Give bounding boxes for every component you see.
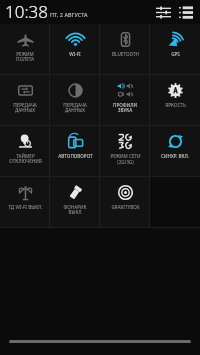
button[interactable]: СИНХР. ВКЛ.	[150, 126, 200, 176]
button[interactable]: GRAVITYBOX	[100, 177, 150, 227]
button[interactable]: АВТОПОВОРОТ	[50, 126, 100, 176]
staticText: ПТ, 2 АВГУСТА	[50, 11, 88, 18]
staticText: 10:38	[5, 0, 48, 23]
staticText: BLUETOOTH	[112, 51, 139, 57]
staticText: ТД WI-FI ВЫКЛ.	[8, 204, 43, 210]
button[interactable]: РЕЖИМ ПОЛЕТА	[0, 24, 50, 74]
staticText: GRAVITYBOX	[111, 204, 140, 210]
staticText: ПЕРЕДАЧА ДАННЫХ	[63, 102, 87, 114]
staticText: WI-FI	[69, 51, 81, 57]
button[interactable]: ПЕРЕДАЧА ДАННЫХ	[0, 75, 50, 125]
staticText: РЕЖИМ СЕТИ	[110, 153, 141, 159]
button[interactable]: ПЕРЕДАЧА ДАННЫХ	[50, 75, 100, 125]
staticText: СИНХР. ВКЛ.	[161, 153, 189, 159]
button[interactable]: ЯРКОСТЬ	[150, 75, 200, 125]
button[interactable]: РЕЖИМ СЕТИ	[100, 126, 150, 176]
button[interactable]: Settings sliders	[153, 2, 173, 22]
staticText: ТАЙМЕР ОТКЛЮЧЕНИЯ	[9, 153, 42, 165]
button[interactable]: Notifications list	[176, 2, 196, 22]
staticText: ПЕРЕДАЧА ДАННЫХ	[13, 102, 37, 114]
staticText: (2G/3G)	[117, 159, 134, 165]
staticText: ПРОФИЛИ ЗВУКА	[113, 102, 137, 114]
staticText: ФОНАРИК ВЫКЛ	[63, 204, 87, 216]
button[interactable]: GPS	[150, 24, 200, 74]
button[interactable]: BLUETOOTH	[100, 24, 150, 74]
staticText: АВТОПОВОРОТ	[58, 153, 93, 159]
staticText: РЕЖИМ ПОЛЕТА	[16, 51, 34, 63]
button[interactable]: ФОНАРИК ВЫКЛ	[50, 177, 100, 227]
button[interactable]: ТД WI-FI ВЫКЛ.	[0, 177, 50, 227]
staticText: ЯРКОСТЬ	[165, 102, 186, 108]
button[interactable]: ТАЙМЕР ОТКЛЮЧЕНИЯ	[0, 126, 50, 176]
button[interactable]: WI-FI	[50, 24, 100, 74]
button[interactable]: ПРОФИЛИ ЗВУКА	[100, 75, 150, 125]
button[interactable]: Close panel	[0, 334, 200, 348]
staticText: GPS	[171, 51, 180, 57]
